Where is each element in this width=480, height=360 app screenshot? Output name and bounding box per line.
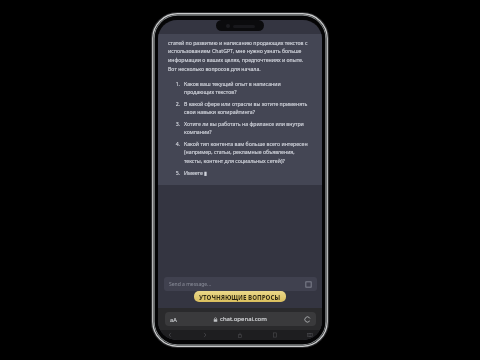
- staticText: статей по развитию и написанию продающих…: [168, 39, 312, 73]
- staticText: Send a message...: [169, 281, 305, 288]
- button[interactable]: Send a message...: [164, 277, 317, 291]
- staticText: Хотите ли вы работать на фрилансе или вн…: [184, 120, 312, 136]
- staticText: 3.: [168, 120, 180, 127]
- button[interactable]: Tabs: [306, 331, 314, 339]
- staticText: УТОЧНЯЮЩИЕ ВОПРОСЫ: [199, 293, 281, 301]
- staticText: Имеете ▮: [184, 169, 312, 176]
- other: Send: [305, 281, 312, 288]
- staticText: chat.openai.com: [220, 315, 267, 323]
- staticText: 2.: [168, 100, 180, 107]
- button[interactable]: aA: [170, 316, 177, 323]
- staticText: ChatGPT мож чь, если вы: [201, 293, 279, 298]
- staticText: В какой сфере или отрасли вы хотите прим…: [184, 100, 312, 116]
- button[interactable]: УТОЧНЯЮЩИЕ ВОПРОСЫ: [194, 291, 286, 302]
- button[interactable]: Back: [166, 331, 174, 339]
- button[interactable]: Text size: [165, 312, 316, 326]
- button[interactable]: Reload: [304, 316, 311, 323]
- button[interactable]: Forward: [201, 331, 209, 339]
- staticText: Какой тип контента вам больше всего инте…: [184, 140, 312, 165]
- staticText: 5.: [168, 169, 180, 176]
- staticText: 4.: [168, 140, 180, 147]
- staticText: Каков ваш текущий опыт в написании прода…: [184, 80, 312, 96]
- staticText: 1.: [168, 80, 180, 87]
- button[interactable]: Share: [236, 331, 244, 339]
- button[interactable]: Bookmarks: [271, 331, 279, 339]
